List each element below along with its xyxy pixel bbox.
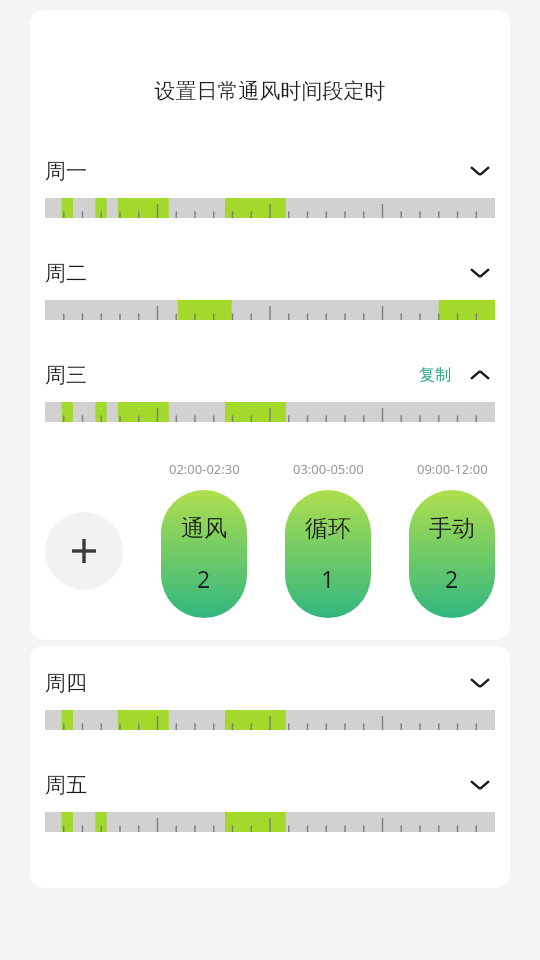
button[interactable]: Add schedule: [45, 512, 123, 590]
staticText: 周一: [45, 158, 87, 184]
staticText: 2: [445, 563, 459, 594]
staticText: 周五: [45, 772, 87, 798]
button[interactable]: 循环: [285, 490, 371, 618]
staticText: 设置日常通风时间段定时: [45, 78, 495, 104]
staticText: 02:00-02:30: [169, 460, 240, 478]
button[interactable]: 周四: [45, 660, 495, 706]
staticText: 03:00-05:00: [293, 460, 364, 478]
staticText: 周二: [45, 260, 87, 286]
button[interactable]: 复制: [413, 359, 457, 391]
button[interactable]: 周五: [45, 762, 495, 808]
staticText: 1: [321, 563, 335, 594]
button[interactable]: 周二: [45, 250, 495, 296]
staticText: 周四: [45, 670, 87, 696]
staticText: 周三: [45, 362, 87, 388]
button[interactable]: Expand: [465, 770, 495, 800]
staticText: 循环: [305, 514, 351, 543]
button[interactable]: Collapse: [465, 360, 495, 390]
staticText: 通风: [181, 514, 227, 543]
staticText: 2: [197, 563, 211, 594]
button[interactable]: Expand: [465, 258, 495, 288]
staticText: 手动: [429, 514, 475, 543]
staticText: 复制: [419, 365, 451, 385]
button[interactable]: Expand: [465, 156, 495, 186]
button[interactable]: 通风: [161, 490, 247, 618]
button[interactable]: 周一: [45, 148, 495, 194]
button[interactable]: 周三: [45, 352, 495, 398]
button[interactable]: Expand: [465, 668, 495, 698]
button[interactable]: 手动: [409, 490, 495, 618]
staticText: 09:00-12:00: [417, 460, 488, 478]
